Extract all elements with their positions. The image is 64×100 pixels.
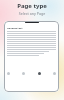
button[interactable]: Tab ${i + 1} xyxy=(7,72,10,75)
button[interactable]: Tab ${i + 1} xyxy=(22,72,25,75)
button[interactable]: Tab ${i + 1} xyxy=(38,72,41,75)
button[interactable]: Tab ${i + 1} xyxy=(53,72,56,75)
staticText: Heading text xyxy=(7,26,23,29)
staticText: Select any Page xyxy=(0,11,64,16)
staticText: Page type xyxy=(0,2,64,10)
